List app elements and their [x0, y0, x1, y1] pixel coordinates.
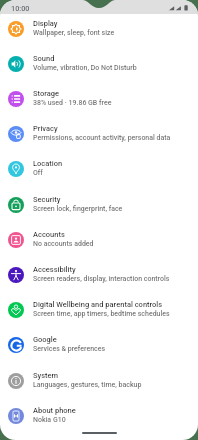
staticText: No accounts added	[33, 240, 94, 248]
button[interactable]: Storage	[0, 81, 198, 116]
staticText: Sound	[33, 54, 55, 63]
staticText: Accounts	[33, 230, 65, 239]
staticText: 38% used · 19.86 GB free	[33, 99, 112, 107]
button[interactable]: Digital Wellbeing and parental controls	[0, 292, 198, 327]
staticText: Digital Wellbeing and parental controls	[33, 300, 163, 309]
button[interactable]: Security	[0, 187, 198, 222]
staticText: Security	[33, 195, 61, 204]
staticText: Volume, vibration, Do Not Disturb	[33, 64, 137, 72]
button[interactable]: Sound	[0, 46, 198, 81]
staticText: Nokia G10	[33, 416, 66, 424]
staticText: Screen lock, fingerprint, face	[33, 205, 123, 213]
staticText: Display	[33, 19, 58, 28]
staticText: 10:00	[11, 4, 30, 13]
staticText: Off	[33, 169, 43, 177]
button[interactable]: Google	[0, 327, 198, 362]
button[interactable]: About phone	[0, 398, 198, 433]
staticText: Accessibility	[33, 265, 76, 274]
staticText: Permissions, account activity, personal …	[33, 134, 171, 142]
staticText: Wallpaper, sleep, font size	[33, 29, 115, 37]
button[interactable]: System	[0, 363, 198, 398]
button[interactable]: Privacy	[0, 116, 198, 151]
staticText: Storage	[33, 89, 60, 98]
staticText: Privacy	[33, 124, 58, 133]
button[interactable]: Accessibility	[0, 257, 198, 292]
staticText: Screen readers, display, interaction con…	[33, 275, 170, 283]
staticText: Google	[33, 335, 57, 344]
staticText: About phone	[33, 406, 76, 415]
staticText: Location	[33, 159, 63, 168]
button[interactable]: Location	[0, 151, 198, 186]
staticText: Languages, gestures, time, backup	[33, 381, 142, 389]
staticText: System	[33, 371, 59, 380]
button[interactable]: Accounts	[0, 222, 198, 257]
button[interactable]: Display	[0, 11, 198, 46]
staticText: Services & preferences	[33, 345, 106, 353]
staticText: Screen time, app timers, bedtime schedul…	[33, 310, 170, 318]
